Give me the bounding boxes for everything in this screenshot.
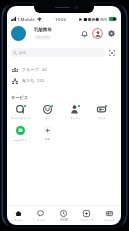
staticText: オープン bbox=[70, 117, 80, 120]
staticText: グループ bbox=[22, 67, 40, 72]
staticText: 追加 bbox=[45, 138, 50, 141]
staticText: 10:02 bbox=[55, 16, 66, 22]
staticText: 検索 bbox=[19, 51, 26, 55]
button[interactable]: ウォレット bbox=[75, 206, 98, 225]
staticText: サービス bbox=[11, 95, 29, 100]
button[interactable]: 検索 bbox=[10, 48, 106, 57]
button[interactable]: グループ bbox=[7, 64, 121, 75]
button[interactable]: トーク bbox=[29, 206, 52, 225]
button[interactable]: 占い bbox=[34, 101, 61, 122]
staticText: 42 bbox=[42, 67, 47, 73]
staticText: トーク bbox=[37, 218, 45, 221]
staticText: 友だち bbox=[22, 78, 35, 83]
button[interactable]: Scan code bbox=[107, 48, 116, 57]
button[interactable]: 友だち bbox=[7, 75, 121, 86]
button[interactable]: Notifications bbox=[79, 28, 89, 38]
staticText: ウォレット bbox=[80, 218, 94, 221]
staticText: LINEギフト bbox=[14, 138, 27, 141]
button[interactable]: オープン bbox=[61, 101, 88, 122]
button[interactable] bbox=[11, 26, 26, 41]
staticText: ニュース bbox=[104, 218, 115, 221]
button[interactable]: LINEギフト bbox=[7, 122, 34, 143]
button[interactable]: ホーム bbox=[7, 206, 29, 225]
button[interactable]: ゲーム bbox=[88, 101, 115, 122]
staticText: 占い bbox=[45, 117, 50, 120]
button[interactable]: オープンチャット bbox=[7, 101, 34, 122]
staticText: 223 bbox=[37, 78, 45, 84]
button[interactable]: ニュース bbox=[98, 206, 121, 225]
button[interactable]: VOOM bbox=[52, 206, 75, 225]
staticText: ゲーム bbox=[98, 117, 106, 120]
staticText: オープンチャット bbox=[11, 117, 31, 120]
staticText: VOOM bbox=[60, 218, 68, 222]
staticText: ステータス bbox=[36, 36, 49, 39]
button[interactable]: 追加 bbox=[34, 122, 61, 143]
button[interactable]: Settings bbox=[106, 28, 116, 38]
staticText: ホーム bbox=[14, 218, 22, 221]
staticText: 96% bbox=[100, 17, 108, 22]
button[interactable]: Add friend bbox=[92, 28, 103, 39]
staticText: T-Mobile bbox=[17, 16, 35, 22]
staticText: 乳酸菌株 bbox=[34, 27, 52, 33]
